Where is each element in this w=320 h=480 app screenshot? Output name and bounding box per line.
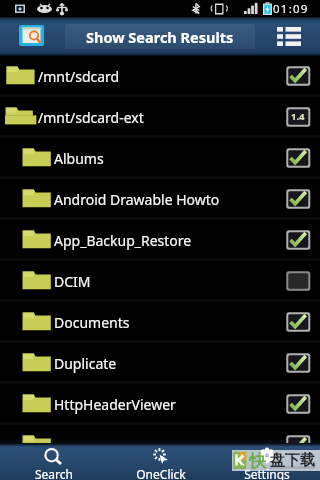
button[interactable]: Android Drawable Howto <box>0 179 320 220</box>
button[interactable]: Show Search Results <box>65 24 255 49</box>
staticText: HttpHeaderViewer <box>54 395 176 414</box>
button[interactable]: /mnt/sdcard-ext <box>0 97 320 138</box>
staticText: DCIM <box>54 272 91 291</box>
button[interactable]: /mnt/sdcard <box>0 56 320 97</box>
staticText: 1.4 <box>291 110 305 123</box>
button[interactable]: App_Backup_Restore <box>0 220 320 261</box>
staticText: Settings <box>244 466 290 480</box>
button[interactable]: Settings <box>214 443 320 480</box>
staticText: OneClick <box>136 466 186 480</box>
staticText: 快 <box>249 451 266 472</box>
button[interactable]: DCIM <box>0 261 320 302</box>
staticText: /mnt/sdcard-ext <box>38 108 144 127</box>
staticText: 01:09 <box>273 1 309 17</box>
button[interactable] <box>0 425 320 443</box>
staticText: Search <box>35 466 73 480</box>
staticText: /mnt/sdcard <box>38 67 120 86</box>
button[interactable]: Albums <box>0 138 320 179</box>
staticText: Android Drawable Howto <box>54 190 220 209</box>
button[interactable]: Search <box>0 443 107 480</box>
button[interactable]: App icon <box>19 25 44 46</box>
button[interactable]: Duplicate <box>0 343 320 384</box>
staticText: App_Backup_Restore <box>54 231 192 250</box>
button[interactable]: HttpHeaderViewer <box>0 384 320 425</box>
button[interactable]: Documents <box>0 302 320 343</box>
staticText: Albums <box>54 149 104 168</box>
button[interactable]: OneClick <box>107 443 214 480</box>
staticText: 盘下载 <box>270 451 315 470</box>
button[interactable]: Menu <box>277 27 301 46</box>
staticText: Documents <box>54 313 130 332</box>
staticText: Show Search Results <box>86 27 234 47</box>
staticText: Duplicate <box>54 354 117 373</box>
